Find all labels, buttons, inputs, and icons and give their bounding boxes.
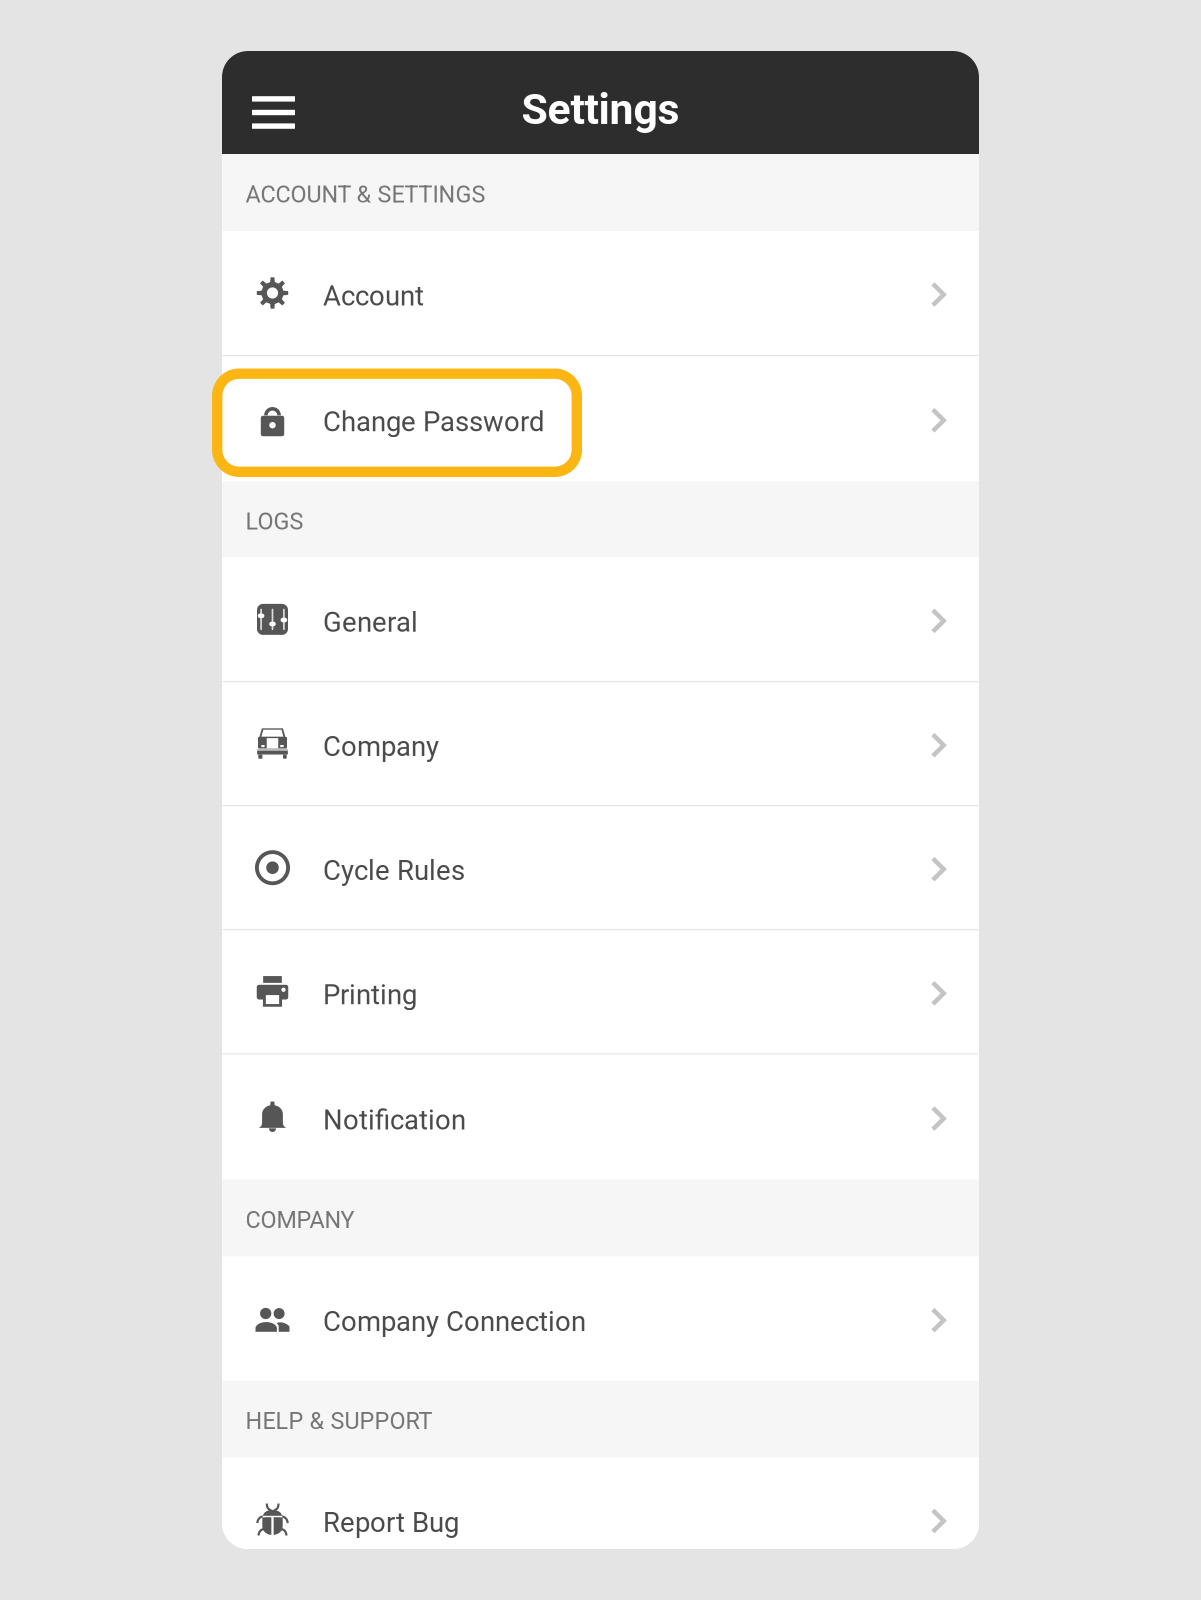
- button[interactable]: Company: [222, 682, 979, 805]
- button[interactable]: Company Connection: [222, 1257, 979, 1381]
- staticText: Report Bug: [323, 1506, 459, 1539]
- staticText: ACCOUNT & SETTINGS: [245, 181, 485, 208]
- button[interactable]: Notification: [222, 1055, 979, 1179]
- button[interactable]: Change Password: [222, 356, 979, 481]
- staticText: Printing: [323, 979, 417, 1011]
- button[interactable]: Account: [222, 231, 979, 355]
- staticText: Notification: [323, 1104, 466, 1136]
- staticText: LOGS: [245, 508, 303, 535]
- staticText: Account: [323, 280, 424, 312]
- staticText: General: [323, 606, 418, 638]
- staticText: HELP & SUPPORT: [245, 1407, 432, 1435]
- staticText: Company Connection: [323, 1306, 586, 1338]
- button[interactable]: Cycle Rules: [222, 806, 979, 929]
- button[interactable]: Report Bug: [222, 1457, 979, 1581]
- staticText: COMPANY: [245, 1206, 354, 1234]
- staticText: Settings: [521, 84, 679, 134]
- staticText: Cycle Rules: [323, 855, 465, 887]
- button[interactable]: General: [222, 558, 979, 681]
- staticText: Company: [323, 731, 439, 763]
- staticText: Change Password: [323, 406, 544, 438]
- button[interactable]: Printing: [222, 930, 979, 1053]
- button[interactable]: Menu: [222, 51, 315, 154]
